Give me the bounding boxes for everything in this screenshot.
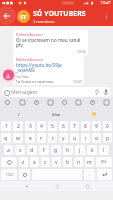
staticText: e xyxy=(29,135,32,142)
button[interactable]: k xyxy=(87,145,97,155)
button[interactable]: q xyxy=(1,133,11,143)
button[interactable] xyxy=(75,108,113,120)
button[interactable]: Recent apps xyxy=(82,181,92,191)
staticText: YouTube xyxy=(16,75,29,79)
button[interactable]: Emoji xyxy=(19,169,30,180)
button[interactable]: I xyxy=(0,108,37,120)
button[interactable]: n xyxy=(74,157,83,167)
staticText: u xyxy=(73,135,77,142)
button[interactable]: Group photo xyxy=(17,10,30,23)
button[interactable]: 1 xyxy=(1,121,11,131)
button[interactable]: 4 xyxy=(37,121,46,131)
button[interactable]: u xyxy=(70,133,79,143)
staticText: 5 xyxy=(51,123,54,130)
button[interactable]: Keyboard tool 5 xyxy=(57,97,71,108)
button[interactable]: r xyxy=(37,133,46,143)
staticText: Tia Fausta e o canal novo xyxy=(16,80,73,84)
button[interactable]: 2 xyxy=(13,121,23,131)
staticText: r xyxy=(40,135,43,142)
button[interactable]: Symbols xyxy=(1,169,17,180)
button[interactable]: Keyboard tool 2 xyxy=(15,97,29,108)
staticText: t xyxy=(52,135,54,142)
staticText: SÓ YOUTUBERS xyxy=(33,9,86,19)
staticText: s xyxy=(19,147,22,154)
button[interactable]: j xyxy=(75,145,85,155)
button[interactable]: y xyxy=(59,133,68,143)
staticText: 7 xyxy=(73,123,76,130)
button[interactable]: 9 xyxy=(92,121,101,131)
staticText: Deleted Account xyxy=(16,32,43,37)
button[interactable]: 0 xyxy=(103,121,112,131)
staticText: 2 xyxy=(17,123,20,130)
button[interactable]: Back xyxy=(21,181,31,191)
button[interactable]: a xyxy=(4,145,13,155)
button[interactable]: Shift xyxy=(1,157,17,167)
button[interactable]: bhai xyxy=(37,108,75,120)
staticText: SY xyxy=(20,13,27,20)
staticText: DEL xyxy=(101,160,107,164)
staticText: d xyxy=(30,147,34,154)
button[interactable]: h xyxy=(63,145,73,155)
staticText: v xyxy=(55,159,58,166)
button[interactable]: g xyxy=(51,145,61,155)
button[interactable]: v xyxy=(52,157,61,167)
staticText: a xyxy=(7,147,10,154)
staticText: 6 xyxy=(62,123,65,130)
staticText: 2 membros xyxy=(33,19,55,24)
button[interactable]: Emoji xyxy=(2,88,11,97)
button[interactable]: Keyboard tool 8 xyxy=(99,97,113,108)
button[interactable]: Back xyxy=(0,9,14,23)
staticText: k xyxy=(91,147,94,154)
button[interactable]: d xyxy=(27,145,37,155)
staticText: w xyxy=(16,135,20,142)
button[interactable]: Keyboard tool 3 xyxy=(29,97,43,108)
staticText: g xyxy=(54,147,58,154)
button[interactable]: o xyxy=(92,133,101,143)
button[interactable]: z xyxy=(19,157,28,167)
button[interactable]: Enter xyxy=(97,169,112,180)
staticText: z xyxy=(22,159,25,166)
button[interactable]: Keyboard tool 6 xyxy=(71,97,85,108)
button[interactable]: e xyxy=(25,133,35,143)
staticText: ?123 xyxy=(6,173,13,177)
button[interactable]: Home xyxy=(52,181,62,191)
button[interactable]: x xyxy=(30,157,39,167)
staticText: b xyxy=(66,159,70,166)
staticText: c xyxy=(44,159,47,166)
button[interactable]: Keyboard tool 7 xyxy=(85,97,99,108)
button[interactable]: 6 xyxy=(59,121,68,131)
button[interactable]: t xyxy=(48,133,57,143)
staticText: 13:47 xyxy=(100,0,111,6)
button[interactable]: 3 xyxy=(25,121,35,131)
button[interactable]: Deleted Account xyxy=(13,55,84,85)
button[interactable]: s xyxy=(15,145,25,155)
button[interactable]: More options xyxy=(100,10,113,23)
button[interactable]: 5 xyxy=(48,121,57,131)
button[interactable]: 8 xyxy=(81,121,90,131)
staticText: bhai xyxy=(52,112,61,117)
button[interactable]: Deleted Account xyxy=(13,30,88,55)
staticText: 9 xyxy=(95,123,98,130)
staticText: 1 xyxy=(5,123,8,130)
button[interactable]: Delete xyxy=(96,157,112,167)
button[interactable]: p xyxy=(103,133,112,143)
staticText: Oi se inscrevam no meu canal pfv xyxy=(16,37,81,49)
button[interactable]: i xyxy=(81,133,90,143)
staticText: x xyxy=(33,159,36,166)
button[interactable]: b xyxy=(63,157,72,167)
button[interactable]: f xyxy=(39,145,49,155)
button[interactable]: m xyxy=(85,157,94,167)
button[interactable]: Voice message xyxy=(101,87,111,97)
button[interactable]: c xyxy=(41,157,50,167)
button[interactable]: w xyxy=(13,133,23,143)
button[interactable]: Period xyxy=(84,169,95,180)
staticText: 13:47 xyxy=(73,79,82,84)
button[interactable]: Keyboard tool 1 xyxy=(0,97,15,108)
button[interactable]: Attach xyxy=(92,88,101,97)
button[interactable]: l xyxy=(99,145,109,155)
button[interactable]: Keyboard tool 4 xyxy=(43,97,57,108)
button[interactable]: 7 xyxy=(70,121,79,131)
staticText: y xyxy=(62,135,65,142)
staticText: 0 xyxy=(106,123,109,130)
